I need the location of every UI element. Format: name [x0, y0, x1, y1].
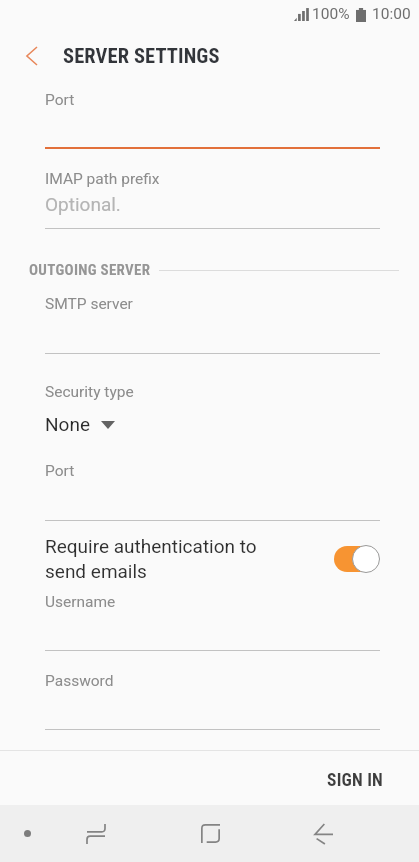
- staticText: Port: [45, 462, 75, 480]
- button[interactable]: Recent apps: [38, 805, 153, 862]
- staticText: Password: [45, 672, 114, 690]
- staticText: 10:00: [372, 5, 411, 23]
- staticText: None: [45, 413, 90, 435]
- staticText: SMTP server: [45, 295, 133, 313]
- staticText: Optional.: [45, 193, 121, 215]
- staticText: IMAP path prefix: [45, 170, 160, 188]
- staticText: SERVER SETTINGS: [63, 44, 220, 68]
- staticText: 100%: [312, 5, 350, 23]
- staticText: Username: [45, 593, 116, 611]
- button[interactable]: Home: [153, 805, 267, 862]
- staticText: SIGN IN: [327, 770, 384, 791]
- button[interactable]: Require authentication to send emails: [334, 545, 380, 573]
- button[interactable]: Back: [267, 805, 381, 862]
- staticText: OUTGOING SERVER: [29, 261, 151, 279]
- staticText: Require authentication to send emails: [45, 535, 334, 582]
- button[interactable]: Hide navigation bar: [7, 805, 47, 862]
- staticText: Port: [45, 91, 75, 109]
- button[interactable]: SIGN IN: [292, 753, 419, 807]
- staticText: Security type: [45, 383, 134, 401]
- button[interactable]: Navigate up: [0, 28, 63, 84]
